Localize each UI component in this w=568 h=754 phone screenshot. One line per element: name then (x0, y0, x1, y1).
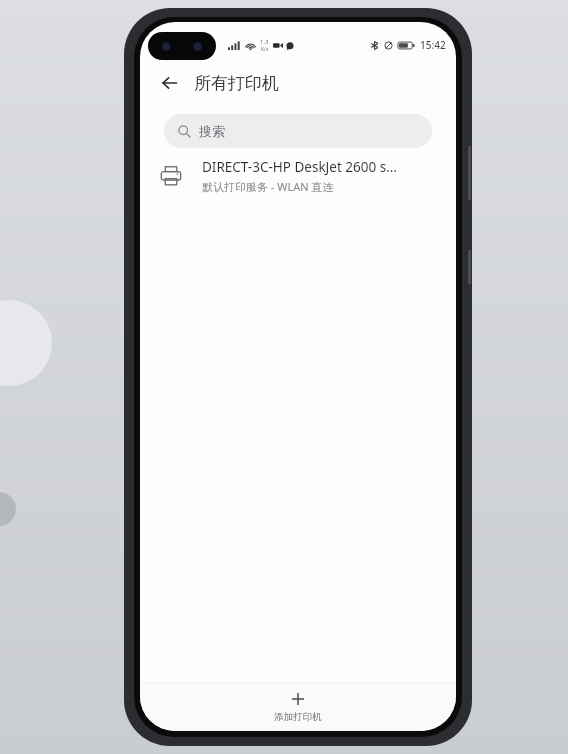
staticText: 默认打印服务 - WLAN 直连 (202, 179, 334, 194)
staticText: 1.3 (260, 38, 269, 46)
button[interactable]: 搜索 (164, 114, 432, 148)
button[interactable]: 添加打印机 (140, 683, 456, 731)
staticText: DIRECT-3C-HP DeskJet 2600 s… (202, 158, 397, 176)
staticText: K/s (261, 46, 269, 53)
staticText: 搜索 (199, 123, 225, 139)
staticText: 所有打印机 (194, 73, 279, 94)
button[interactable]: DIRECT-3C-HP DeskJet 2600 s… (140, 148, 456, 204)
staticText: 15:42 (420, 38, 446, 52)
staticText: 添加打印机 (274, 711, 322, 723)
button[interactable]: Back (154, 68, 184, 98)
